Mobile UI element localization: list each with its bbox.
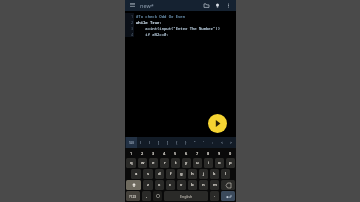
button[interactable]: h (188, 169, 197, 179)
button[interactable]: m (210, 180, 219, 190)
button[interactable]: Open folder (202, 1, 211, 10)
button[interactable]: v (177, 180, 186, 190)
button[interactable]: < (217, 137, 226, 148)
staticText: r (164, 160, 166, 166)
staticText: d (158, 171, 161, 177)
button[interactable]: Emoji (153, 191, 162, 201)
button[interactable]: c (166, 180, 175, 190)
button[interactable]: s (143, 169, 153, 179)
button[interactable]: ' (199, 137, 208, 148)
staticText: > (230, 140, 232, 145)
button[interactable]: 7 (192, 149, 203, 157)
button[interactable]: 5 (170, 149, 181, 157)
button[interactable]: Menu (128, 1, 137, 10)
button[interactable]: y (182, 158, 191, 168)
button[interactable]: t (171, 158, 180, 168)
staticText: new* (140, 2, 154, 9)
button[interactable]: TAB (126, 137, 137, 148)
staticText: v (180, 182, 183, 188)
staticText: 8 (207, 151, 210, 156)
button[interactable]: o (215, 158, 224, 168)
staticText: if a%2==0: (136, 32, 169, 37)
button[interactable]: d (155, 169, 164, 179)
staticText: s (147, 171, 150, 177)
button[interactable]: j (199, 169, 208, 179)
button[interactable]: English (164, 191, 208, 201)
button[interactable]: ) (145, 137, 154, 148)
staticText: i (208, 160, 210, 166)
button[interactable]: 4 (159, 149, 170, 157)
button[interactable]: z (143, 180, 153, 190)
staticText: c (169, 182, 172, 188)
button[interactable]: b (188, 180, 197, 190)
button[interactable]: Run (208, 114, 227, 133)
staticText: #To check Odd Or Even (136, 14, 186, 19)
button[interactable]: Backspace (221, 180, 235, 190)
button[interactable]: 2 (137, 149, 148, 157)
staticText: e (152, 160, 155, 166)
button[interactable]: g (177, 169, 186, 179)
staticText: ] (167, 140, 169, 145)
staticText: TAB (129, 141, 134, 145)
button[interactable]: e (149, 158, 158, 168)
button[interactable]: 6 (181, 149, 192, 157)
button[interactable]: u (193, 158, 202, 168)
staticText: t (175, 160, 177, 166)
staticText: p (229, 160, 232, 166)
staticText: y (185, 160, 188, 166)
button[interactable]: x (155, 180, 164, 190)
staticText: ( (140, 140, 142, 145)
button[interactable]: . (210, 191, 219, 201)
button[interactable]: [ (154, 137, 163, 148)
button[interactable]: l (221, 169, 230, 179)
staticText: 3 (131, 26, 134, 31)
button[interactable]: , (142, 191, 151, 201)
staticText: 5 (174, 151, 177, 156)
staticText: j (203, 171, 205, 177)
button[interactable]: Hints (213, 1, 222, 10)
button[interactable]: 1 (125, 149, 137, 157)
button[interactable]: { (172, 137, 181, 148)
button[interactable]: i (204, 158, 213, 168)
staticText: ) (149, 140, 151, 145)
staticText: 3 (152, 151, 155, 156)
staticText: q (130, 160, 133, 166)
button[interactable]: f (166, 169, 175, 179)
staticText: 9 (218, 151, 221, 156)
button[interactable]: 9 (214, 149, 225, 157)
button[interactable]: " (190, 137, 199, 148)
staticText: k (213, 171, 216, 177)
staticText: x (158, 182, 161, 188)
button[interactable]: 8 (203, 149, 214, 157)
button[interactable]: q (126, 158, 136, 168)
staticText: 2 (131, 20, 134, 25)
button[interactable]: Enter (221, 191, 235, 201)
button[interactable]: k (210, 169, 219, 179)
button[interactable]: Shift (126, 180, 141, 190)
button[interactable]: > (226, 137, 235, 148)
button[interactable]: 0 (225, 149, 236, 157)
staticText: 4 (131, 32, 134, 37)
button[interactable]: p (226, 158, 235, 168)
button[interactable]: ] (163, 137, 172, 148)
staticText: < (221, 140, 223, 145)
staticText: a=int(input("Enter The Number")) (136, 26, 221, 31)
button[interactable]: w (138, 158, 147, 168)
staticText: z (147, 182, 149, 188)
button[interactable]: n (199, 180, 208, 190)
staticText: f (170, 171, 172, 177)
staticText: o (218, 160, 221, 166)
button[interactable]: ( (137, 137, 145, 148)
staticText: m (213, 182, 217, 188)
button[interactable]: } (181, 137, 190, 148)
staticText: 7 (196, 151, 199, 156)
button[interactable]: a (131, 169, 141, 179)
button[interactable]: r (160, 158, 169, 168)
button[interactable]: More options (224, 1, 233, 10)
button[interactable]: : (208, 137, 217, 148)
button[interactable]: 3 (148, 149, 159, 157)
staticText: 6 (185, 151, 188, 156)
staticText: while True: (136, 20, 162, 25)
button[interactable]: ?123 (126, 191, 140, 201)
staticText: [ (158, 140, 160, 145)
